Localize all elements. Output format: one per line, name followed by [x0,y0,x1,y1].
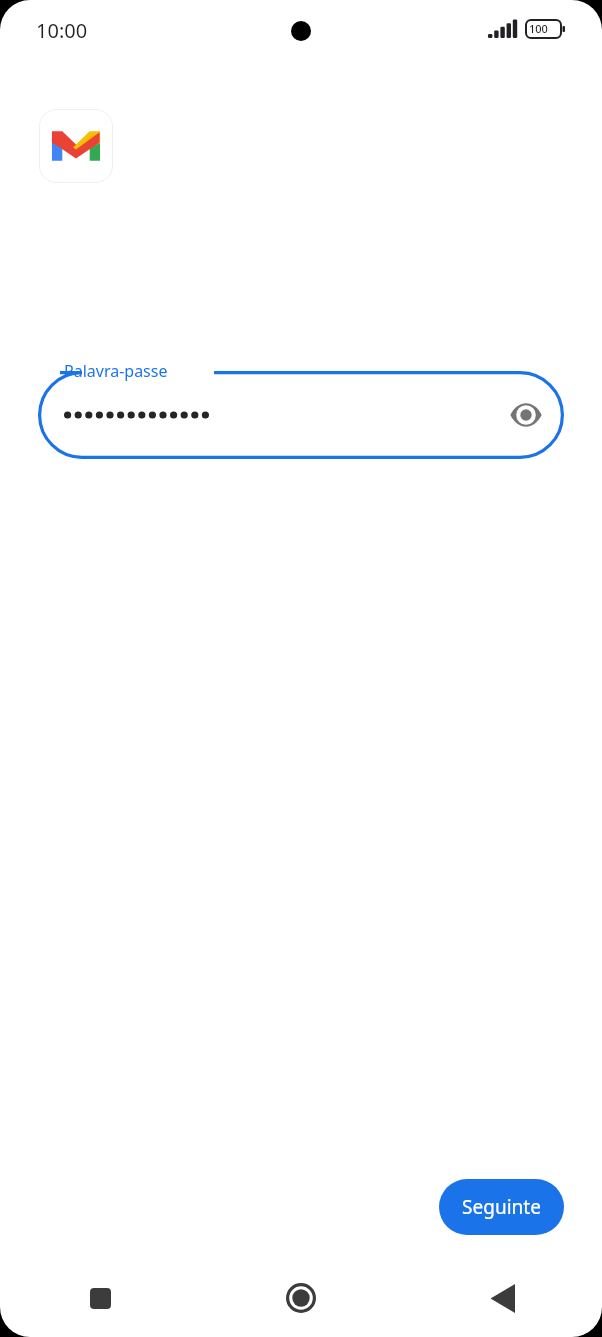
button[interactable]: Seguinte [439,1179,564,1235]
button[interactable]: Mostrar palavra-passe [38,371,564,459]
button[interactable]: Mostrar palavra-passe [502,391,550,439]
staticText: Seguinte [462,1194,541,1220]
button[interactable]: Recentes [0,1259,200,1337]
button[interactable]: Início [200,1259,401,1337]
staticText: Palavra-passe [64,360,168,382]
button[interactable]: Voltar [401,1259,602,1337]
button[interactable]: Gmail [39,109,113,183]
staticText: 10:00 [36,17,88,44]
staticText: 100 [529,21,548,36]
